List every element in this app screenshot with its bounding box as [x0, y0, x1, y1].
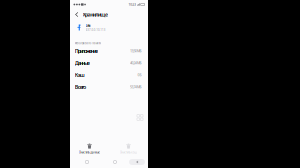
button[interactable]: Назад — [126, 156, 148, 168]
staticText: Всего — [75, 83, 86, 91]
staticText: 53,74 МБ — [130, 85, 141, 89]
staticText: Очистить кэш — [120, 150, 137, 154]
button[interactable]: Назад — [71, 9, 82, 20]
staticText: Lite — [86, 23, 91, 28]
staticText: Данные — [75, 59, 90, 67]
staticText: Очистить данные — [79, 150, 100, 154]
staticText: 10:23 — [128, 2, 136, 6]
button[interactable]: Очистить кэш — [109, 142, 148, 156]
staticText: Хранилище — [82, 11, 108, 18]
button[interactable]: Панель приложений — [136, 114, 143, 121]
staticText: Кэш — [75, 71, 85, 79]
staticText: Использовано памяти — [75, 41, 101, 45]
staticText: 437.0.0.10.113 — [86, 28, 106, 32]
button[interactable]: Недавние — [70, 156, 104, 168]
staticText: Приложение — [75, 47, 98, 55]
staticText: 0 Б — [137, 73, 141, 77]
staticText: 40,24 МБ — [130, 61, 141, 65]
staticText: 13,50 МБ — [130, 49, 141, 53]
button[interactable]: Домой — [104, 156, 126, 168]
button[interactable]: Очистить данные — [70, 142, 109, 156]
